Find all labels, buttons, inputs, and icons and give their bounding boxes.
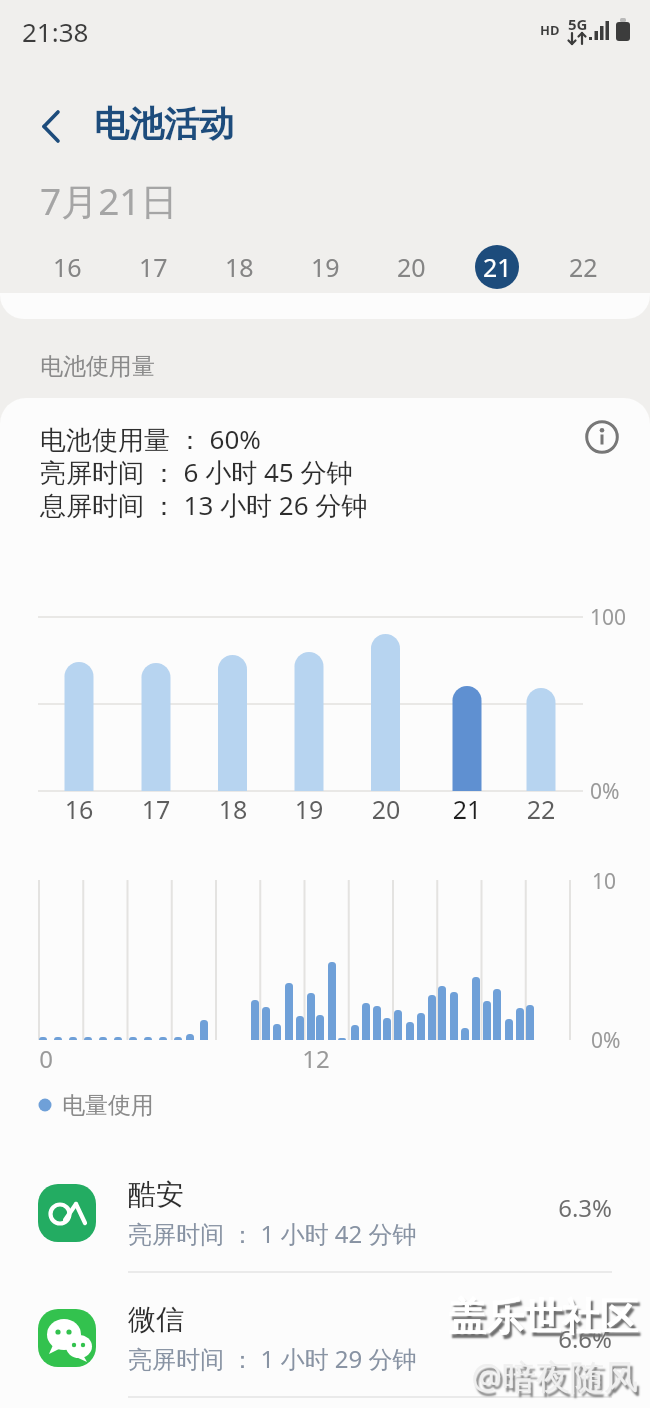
button[interactable] — [585, 420, 619, 454]
staticText: 盖乐世社区 — [433, 1293, 638, 1341]
staticText: 19 — [311, 250, 340, 284]
staticText: 18 — [225, 250, 254, 284]
staticText: 20 — [397, 250, 426, 284]
staticText: 18 — [208, 792, 258, 826]
staticText: 0% — [591, 1026, 621, 1055]
staticText: 20 — [361, 792, 411, 826]
button[interactable]: 19 — [282, 242, 368, 292]
staticText: 17 — [131, 792, 181, 826]
staticText: 0 — [30, 1042, 62, 1075]
staticText: 微信 — [128, 1302, 184, 1337]
staticText: 亮屏时间 ： 1 小时 42 分钟 — [128, 1217, 417, 1250]
button[interactable] — [0, 1164, 650, 1272]
staticText: 12 — [296, 1042, 336, 1075]
button[interactable]: 18 — [196, 242, 282, 292]
button[interactable] — [0, 1289, 650, 1397]
button[interactable]: 22 — [540, 242, 626, 292]
staticText: 21:38 — [22, 14, 89, 49]
staticText: 100 — [590, 603, 627, 632]
staticText: 19 — [284, 792, 334, 826]
staticText: 6.6% — [520, 1322, 612, 1355]
staticText: 7月21日 — [40, 175, 178, 226]
staticText: @暗夜随风 — [453, 1353, 638, 1399]
staticText: 21 — [483, 250, 512, 284]
staticText: 21 — [442, 792, 492, 826]
button[interactable]: 16 — [24, 242, 110, 292]
staticText: 6.3% — [520, 1191, 612, 1224]
button[interactable]: 20 — [368, 242, 454, 292]
staticText: 10 — [592, 867, 617, 896]
staticText: 亮屏时间 ： 1 小时 29 分钟 — [128, 1342, 417, 1375]
staticText: HD — [540, 21, 560, 39]
staticText: 17 — [139, 250, 168, 284]
staticText: 16 — [54, 792, 104, 826]
staticText: 0% — [590, 777, 620, 806]
staticText: 电池活动 — [94, 102, 234, 146]
staticText: 22 — [569, 250, 598, 284]
staticText: 电池使用量 — [40, 352, 155, 381]
button[interactable] — [38, 110, 66, 144]
staticText: 22 — [516, 792, 566, 826]
staticText: 5G — [568, 14, 588, 34]
button[interactable]: 21 — [454, 242, 540, 292]
staticText: 电池使用量 ： 60% — [40, 421, 261, 457]
staticText: 酷安 — [128, 1177, 184, 1212]
staticText: 亮屏时间 ： 6 小时 45 分钟 — [40, 454, 353, 490]
staticText: 电量使用 — [62, 1091, 154, 1120]
button[interactable]: 17 — [110, 242, 196, 292]
staticText: 16 — [53, 250, 82, 284]
staticText: 息屏时间 ： 13 小时 26 分钟 — [40, 487, 368, 523]
